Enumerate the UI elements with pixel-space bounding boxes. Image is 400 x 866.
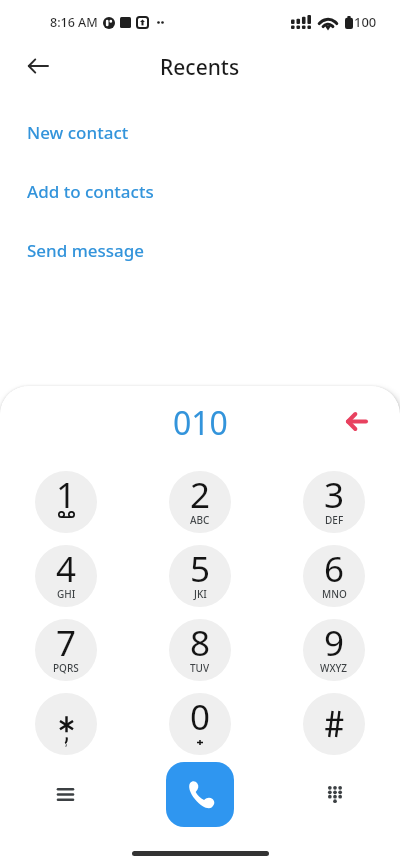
staticText: PQRS xyxy=(53,661,79,675)
button[interactable]: Backspace xyxy=(334,399,378,443)
button[interactable]: 1 xyxy=(35,471,97,533)
button[interactable]: 8 xyxy=(169,619,231,681)
button[interactable]: 6 xyxy=(303,545,365,607)
staticText: 8 xyxy=(190,619,211,667)
staticText: TUV xyxy=(190,661,210,675)
button[interactable]: 3 xyxy=(303,471,365,533)
button[interactable]: 9 xyxy=(303,619,365,681)
staticText: 6 xyxy=(324,545,345,593)
button[interactable]: , xyxy=(35,693,97,755)
staticText: WXYZ xyxy=(320,661,348,675)
staticText: 100 xyxy=(354,13,377,31)
button[interactable] xyxy=(303,693,365,755)
staticText: 0 xyxy=(190,693,211,741)
button[interactable]: Call xyxy=(166,762,234,827)
button[interactable]: Call history xyxy=(43,772,87,816)
staticText: Recents xyxy=(160,53,240,82)
button[interactable]: Dialpad xyxy=(313,772,357,816)
staticText: 2 xyxy=(190,471,211,519)
staticText: 9 xyxy=(324,619,345,667)
staticText: 010 xyxy=(173,401,228,445)
staticText: 5 xyxy=(190,545,211,593)
button[interactable]: 7 xyxy=(35,619,97,681)
button[interactable]: 5 xyxy=(169,545,231,607)
button[interactable]: 2 xyxy=(169,471,231,533)
staticText: 1 xyxy=(56,471,77,519)
staticText: New contact xyxy=(27,121,129,144)
button[interactable]: Back xyxy=(16,44,59,87)
staticText: , xyxy=(65,735,68,749)
button[interactable]: Add to contacts xyxy=(0,162,400,221)
staticText: 3 xyxy=(324,471,345,519)
staticText: 8:16 AM xyxy=(50,14,98,31)
staticText: ABC xyxy=(190,513,210,527)
staticText: MNO xyxy=(322,587,347,601)
staticText: Send message xyxy=(27,239,145,262)
staticText: 7 xyxy=(56,619,77,667)
button[interactable]: 4 xyxy=(35,545,97,607)
staticText: JKI xyxy=(194,587,207,601)
staticText: Add to contacts xyxy=(27,180,154,203)
staticText: GHI xyxy=(57,587,76,601)
button[interactable]: Send message xyxy=(0,221,400,280)
staticText: DEF xyxy=(325,513,344,527)
button[interactable]: 0 xyxy=(169,693,231,755)
button[interactable]: New contact xyxy=(0,103,400,162)
staticText: 4 xyxy=(56,545,77,593)
